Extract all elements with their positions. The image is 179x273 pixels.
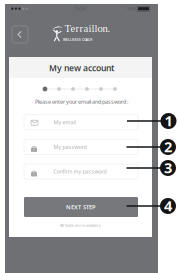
staticText: 100% — [126, 6, 135, 11]
staticText: My email — [53, 119, 75, 126]
staticText: My password — [53, 143, 86, 151]
staticText: My new account — [49, 62, 114, 74]
staticText: All fields are mandatory — [60, 223, 101, 228]
button[interactable]: My password — [24, 139, 138, 154]
button[interactable]: NEXT STEP — [24, 197, 138, 217]
button[interactable]: My email — [24, 115, 138, 130]
staticText: 2 — [164, 137, 172, 157]
button[interactable]: Back — [10, 24, 30, 45]
staticText: 1 — [164, 111, 172, 131]
staticText: Please enter your email and password : — [35, 98, 129, 105]
staticText: Confirm my password — [53, 168, 106, 175]
staticText: 4 — [164, 196, 172, 216]
staticText: NEXT STEP — [66, 203, 96, 211]
staticText: WELLNESS COACH — [63, 38, 92, 42]
button[interactable]: Confirm my password — [24, 164, 138, 179]
staticText: 16:04 — [74, 6, 87, 12]
staticText: 3 — [164, 158, 172, 178]
staticText: Terraillon. — [64, 22, 110, 34]
